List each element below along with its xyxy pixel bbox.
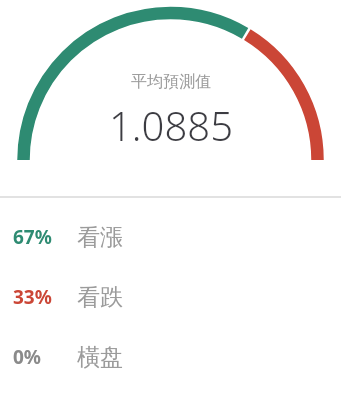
button[interactable]: 33% [0,267,341,327]
staticText: 看跌 [77,283,123,312]
staticText: 0% [13,344,42,370]
button[interactable]: 67% [0,207,341,267]
button[interactable]: 0% [0,327,341,387]
staticText: 1.0885 [109,98,233,152]
staticText: 平均預測值 [131,72,211,92]
staticText: 橫盘 [77,343,123,372]
staticText: 33% [13,284,52,310]
staticText: 67% [13,224,52,250]
staticText: 看漲 [77,223,123,252]
